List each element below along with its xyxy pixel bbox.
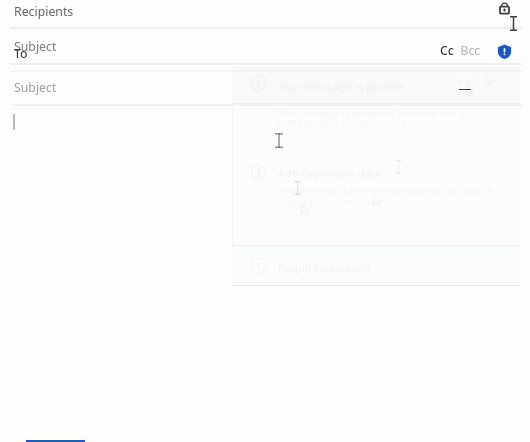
button[interactable]: Encryption [497, 44, 512, 59]
button[interactable]: Your message is private [232, 67, 520, 103]
staticText: Add expiration date [278, 165, 382, 180]
button[interactable]: Cc [440, 42, 481, 59]
staticText: Subject [14, 38, 57, 55]
staticText: To [14, 45, 28, 62]
button[interactable]: Subject [0, 70, 530, 104]
staticText: Subject [14, 79, 57, 96]
staticText: Cc [440, 42, 454, 59]
button[interactable]: Subject [0, 31, 530, 63]
staticText: Edit [458, 77, 472, 87]
staticText: Bcc [454, 42, 481, 59]
button[interactable]: Recipients [0, 0, 530, 27]
button[interactable]: Edit settings [456, 74, 474, 91]
staticText: Recipients [14, 3, 74, 20]
button[interactable]: Confidential mode [497, 1, 512, 16]
